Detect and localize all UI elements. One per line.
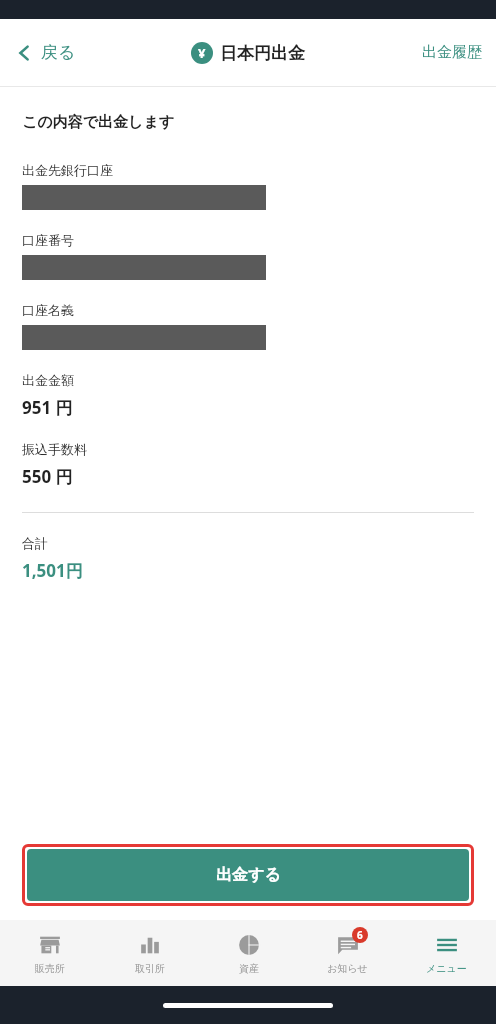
staticText: 口座名義 — [22, 302, 74, 318]
staticText: ¥ — [198, 44, 206, 62]
button[interactable]: メニュー — [397, 932, 496, 975]
staticText: 出金履歴 — [422, 43, 482, 62]
staticText: 口座番号 — [22, 232, 74, 248]
button[interactable]: 6 — [298, 932, 397, 975]
staticText: この内容で出金します — [22, 113, 175, 132]
button[interactable]: 販売所 — [0, 932, 100, 975]
button[interactable]: 出金履歴 — [422, 43, 482, 62]
staticText: 出金する — [216, 865, 281, 885]
staticText: 1,501円 — [22, 559, 83, 582]
staticText: 合計 — [22, 535, 48, 551]
button[interactable]: 取引所 — [100, 932, 199, 975]
staticText: 出金先銀行口座 — [22, 162, 113, 178]
staticText: 取引所 — [135, 962, 165, 975]
staticText: 951 円 — [22, 396, 73, 419]
staticText: 戻る — [41, 42, 76, 63]
staticText: 550 円 — [22, 465, 73, 488]
staticText: お知らせ — [327, 962, 368, 975]
staticText: メニュー — [426, 962, 467, 975]
staticText: 出金金額 — [22, 372, 74, 388]
staticText: 6 — [357, 928, 363, 942]
staticText: 振込手数料 — [22, 441, 87, 457]
button[interactable]: 資産 — [199, 932, 298, 975]
staticText: 日本円出金 — [220, 43, 305, 64]
staticText: 販売所 — [35, 962, 65, 975]
staticText: 資産 — [239, 962, 259, 975]
button[interactable]: 出金する — [27, 849, 469, 901]
button[interactable]: 戻る — [14, 42, 76, 63]
